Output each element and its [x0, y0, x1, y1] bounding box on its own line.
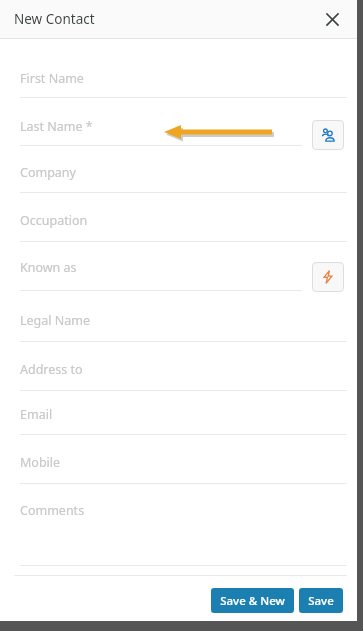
- staticText: Mobile: [20, 454, 61, 471]
- button[interactable]: Legal Name: [20, 310, 347, 343]
- staticText: Company: [20, 164, 76, 181]
- button[interactable]: Pick contact: [312, 120, 344, 150]
- button[interactable]: Known as: [20, 257, 302, 292]
- button[interactable]: Address to: [20, 359, 347, 392]
- button[interactable]: Save & New: [211, 588, 294, 613]
- staticText: Email: [20, 406, 53, 423]
- button[interactable]: Save: [299, 588, 343, 613]
- button[interactable]: Comments: [20, 500, 347, 567]
- button[interactable]: Last Name *: [20, 116, 302, 147]
- button[interactable]: Close: [319, 6, 345, 32]
- staticText: First Name: [20, 70, 84, 87]
- staticText: New Contact: [14, 10, 95, 28]
- button[interactable]: First Name: [20, 68, 347, 99]
- button[interactable]: Company: [20, 162, 347, 194]
- staticText: Known as: [20, 259, 77, 276]
- staticText: Address to: [20, 361, 83, 378]
- button[interactable]: Email: [20, 404, 347, 436]
- button[interactable]: Auto fill: [312, 262, 344, 292]
- staticText: Save: [308, 593, 334, 609]
- staticText: Occupation: [20, 212, 88, 229]
- button[interactable]: Occupation: [20, 210, 347, 243]
- staticText: Comments: [20, 502, 85, 519]
- staticText: Legal Name: [20, 312, 91, 329]
- button[interactable]: Mobile: [20, 452, 347, 485]
- staticText: Last Name *: [20, 118, 93, 135]
- staticText: Save & New: [220, 593, 285, 609]
